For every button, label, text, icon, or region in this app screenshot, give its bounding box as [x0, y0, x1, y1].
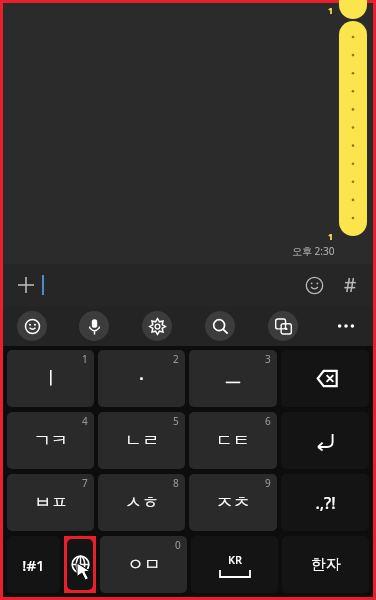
- button[interactable]: Voice: [79, 311, 109, 341]
- staticText: ㄷㅌ: [216, 430, 250, 451]
- staticText: 1: [328, 4, 334, 16]
- staticText: ㅈㅊ: [216, 492, 250, 513]
- staticText: #: [344, 272, 357, 298]
- staticText: ㄱㅋ: [34, 430, 68, 451]
- staticText: 2: [173, 352, 179, 366]
- button[interactable]: Space: [191, 536, 278, 593]
- button[interactable]: ㅅㅎ: [98, 474, 185, 531]
- button[interactable]: !#1: [7, 536, 60, 593]
- button[interactable]: More options: [331, 311, 361, 341]
- button[interactable]: ㄷㅌ: [189, 412, 277, 469]
- staticText: 한자: [311, 555, 341, 574]
- staticText: 9: [265, 476, 271, 490]
- button[interactable]: Emoji: [299, 270, 329, 300]
- staticText: ㅡ: [224, 367, 242, 390]
- button[interactable]: Translate: [268, 311, 298, 341]
- button[interactable]: ㅡ: [189, 350, 277, 407]
- staticText: ㅣ: [42, 367, 60, 390]
- button[interactable]: ㅂㅍ: [7, 474, 94, 531]
- staticText: ㅂㅍ: [34, 492, 68, 513]
- staticText: 1: [82, 352, 88, 366]
- button[interactable]: Backspace: [281, 350, 369, 407]
- staticText: 7: [82, 476, 88, 490]
- button[interactable]: Search: [205, 311, 235, 341]
- button[interactable]: Attach: [11, 270, 41, 300]
- button[interactable]: ㅣ: [7, 350, 94, 407]
- button[interactable]: Enter: [281, 412, 369, 469]
- button[interactable]: ·: [98, 350, 185, 407]
- button[interactable]: Hashtag: [335, 270, 365, 300]
- button[interactable]: .,?!: [281, 474, 369, 531]
- staticText: KR: [228, 552, 242, 567]
- staticText: 3: [265, 352, 271, 366]
- button[interactable]: Emoji: [17, 311, 47, 341]
- staticText: 오후 2:30: [292, 244, 335, 258]
- button[interactable]: ㄴㄹ: [98, 412, 185, 469]
- staticText: ㄴㄹ: [125, 430, 159, 451]
- staticText: ·: [139, 366, 144, 391]
- button[interactable]: ㅇㅁ: [100, 536, 187, 593]
- staticText: ㅅㅎ: [125, 492, 159, 513]
- staticText: 0: [175, 538, 181, 552]
- button[interactable]: ㅈㅊ: [189, 474, 277, 531]
- staticText: 1: [328, 230, 334, 242]
- staticText: 4: [82, 414, 88, 428]
- button[interactable]: ㄱㅋ: [7, 412, 94, 469]
- staticText: !#1: [22, 555, 45, 575]
- button[interactable]: Change keyboard: [67, 539, 93, 590]
- button[interactable]: 한자: [282, 536, 369, 593]
- staticText: .,?!: [315, 492, 336, 514]
- staticText: 5: [173, 414, 179, 428]
- staticText: 8: [173, 476, 179, 490]
- button[interactable]: Settings: [142, 311, 172, 341]
- staticText: ㅇㅁ: [127, 554, 161, 575]
- staticText: 6: [265, 414, 271, 428]
